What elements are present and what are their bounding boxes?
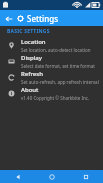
staticText: Set location, auto-detect location xyxy=(21,47,91,53)
staticText: Select date format, set time format xyxy=(21,63,95,69)
staticText: Settings xyxy=(27,13,59,24)
button[interactable]: Recent apps xyxy=(69,170,103,183)
staticText: Set auto-refresh, app refresh interval xyxy=(21,79,99,85)
staticText: v1.40 Copyright © Sharkbite Inc. xyxy=(21,95,90,101)
staticText: Display xyxy=(21,54,42,62)
button[interactable]: Display xyxy=(0,53,103,69)
button[interactable]: About xyxy=(0,85,103,101)
button[interactable]: Back xyxy=(0,170,35,183)
button[interactable]: Refresh xyxy=(0,69,103,85)
staticText: BASIC SETTINGS xyxy=(7,28,50,35)
button[interactable]: Home xyxy=(35,170,69,183)
staticText: Location xyxy=(21,38,46,46)
staticText: Refresh xyxy=(21,70,43,78)
button[interactable]: Location xyxy=(0,37,103,53)
staticText: About xyxy=(21,86,39,94)
button[interactable]: Back xyxy=(2,12,15,25)
